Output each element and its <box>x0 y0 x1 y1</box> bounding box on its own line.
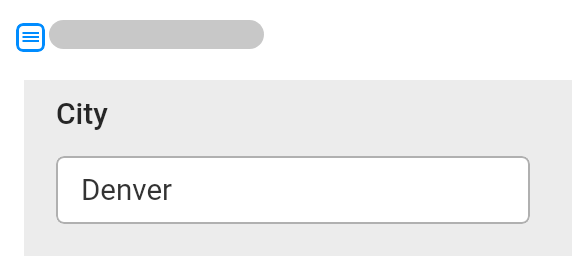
staticText: Denver <box>81 173 173 208</box>
button[interactable]: City input field <box>56 156 530 224</box>
staticText: City <box>56 96 108 131</box>
button[interactable]: Open navigation menu <box>16 23 45 52</box>
